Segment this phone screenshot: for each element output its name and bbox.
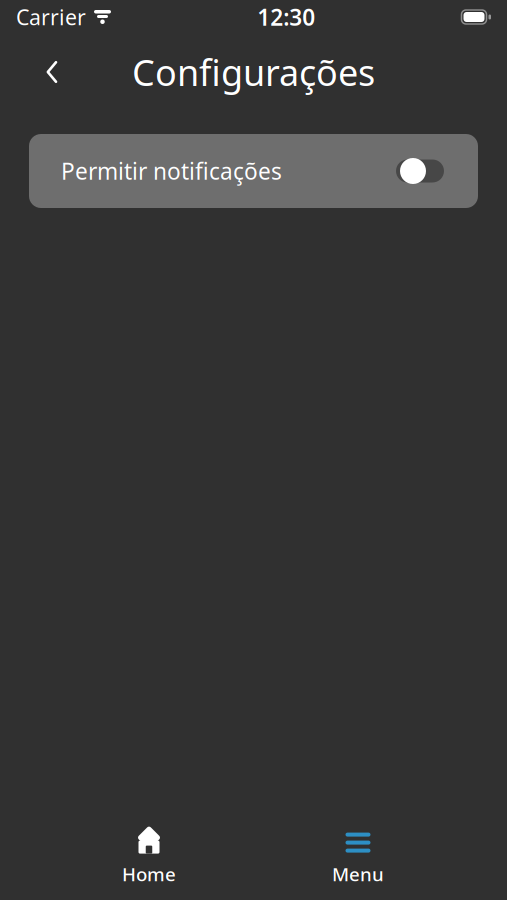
button[interactable]: Permitir notificações [29, 134, 478, 208]
button[interactable]: Menu [298, 828, 418, 888]
button[interactable]: Back [26, 46, 78, 98]
staticText: Carrier [16, 3, 86, 31]
staticText: Menu [332, 862, 384, 886]
staticText: Permitir notificações [61, 156, 282, 186]
staticText: Configurações [132, 48, 375, 96]
staticText: 12:30 [257, 2, 315, 32]
button[interactable]: Home [89, 828, 209, 888]
staticText: Home [122, 862, 176, 886]
